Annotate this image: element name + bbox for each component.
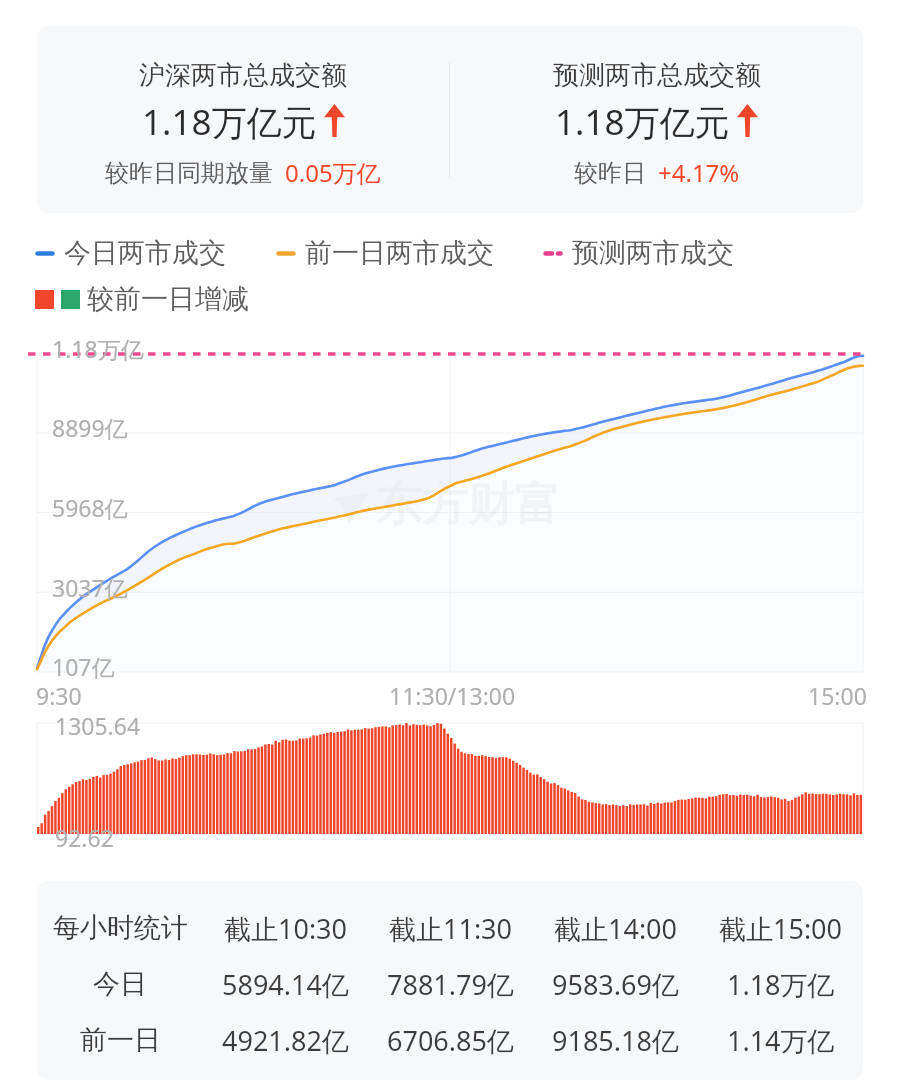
staticText: 1.18万亿 — [52, 333, 144, 364]
staticText: 6706.85亿 — [387, 1022, 514, 1059]
staticText: 1305.64 — [55, 710, 141, 741]
staticText: 较前一日增减 — [87, 282, 249, 316]
staticText: 预测两市成交 — [572, 236, 734, 270]
staticText: 沪深两市总成交额 — [139, 59, 347, 92]
staticText: 5894.14亿 — [222, 966, 349, 1003]
button[interactable]: 前一日两市成交 — [276, 236, 494, 270]
staticText: 今日 — [93, 967, 147, 1001]
staticText: 1.18万亿 — [727, 966, 835, 1003]
staticText: 较昨日同期放量 — [105, 158, 273, 188]
staticText: 107亿 — [52, 651, 115, 682]
staticText: 92.62 — [55, 822, 114, 853]
staticText: 11:30/13:00 — [389, 680, 516, 711]
staticText: 截止15:00 — [719, 910, 843, 947]
staticText: 预测两市总成交额 — [553, 59, 761, 92]
staticText: 1.18万亿元 — [142, 98, 317, 146]
staticText: 9185.18亿 — [552, 1022, 679, 1059]
staticText: 8899亿 — [52, 412, 128, 443]
staticText: +4.17% — [658, 156, 740, 189]
staticText: 0.05万亿 — [285, 156, 381, 189]
staticText: 前一日两市成交 — [305, 236, 494, 270]
button[interactable]: 沪深两市总成交额 — [37, 26, 863, 213]
staticText: 1.14万亿 — [727, 1022, 835, 1059]
staticText: 截止10:30 — [224, 910, 348, 947]
button[interactable]: 今日两市成交 — [35, 236, 226, 270]
staticText: 1.18万亿元 — [555, 98, 730, 146]
staticText: 7881.79亿 — [387, 966, 514, 1003]
staticText: 今日两市成交 — [64, 236, 226, 270]
button[interactable]: 预测两市成交 — [543, 236, 734, 270]
staticText: 3037亿 — [52, 572, 128, 603]
staticText: 15:00 — [808, 680, 867, 711]
staticText: 每小时统计 — [53, 911, 188, 945]
staticText: 截止11:30 — [389, 910, 513, 947]
button[interactable]: 较前一日增减 — [35, 282, 249, 316]
staticText: 5968亿 — [52, 492, 128, 523]
staticText: 4921.82亿 — [222, 1022, 349, 1059]
staticText: 9583.69亿 — [552, 966, 679, 1003]
staticText: 9:30 — [36, 680, 82, 711]
staticText: 前一日 — [80, 1023, 161, 1057]
staticText: 较昨日 — [574, 158, 646, 188]
staticText: 截止14:00 — [554, 910, 678, 947]
staticText: 东方财富 — [376, 476, 560, 534]
